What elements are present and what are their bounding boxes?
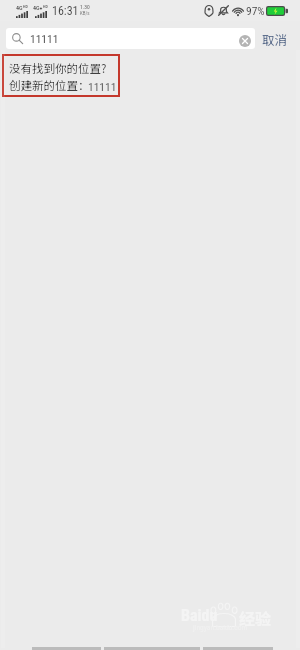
staticText: 经验: [239, 606, 272, 629]
staticText: 4G+: [33, 4, 43, 11]
staticText: HD: [23, 4, 28, 9]
staticText: KB/s: [80, 10, 90, 16]
staticText: 11111: [88, 80, 117, 93]
staticText: 创建新的位置：: [9, 77, 90, 94]
button[interactable]: 11111: [6, 28, 255, 49]
staticText: 97%: [246, 4, 265, 17]
button[interactable]: Clear search text: [239, 35, 251, 47]
staticText: 4G: [16, 4, 23, 11]
staticText: 11111: [30, 32, 59, 45]
button[interactable]: 取消: [255, 21, 295, 52]
button[interactable]: 没有找到你的位置?: [2, 54, 120, 97]
staticText: 1.30: [80, 4, 90, 10]
staticText: Baidu: [181, 606, 218, 625]
staticText: HD: [43, 4, 48, 9]
staticText: 16:31: [52, 4, 79, 18]
staticText: 没有找到你的位置?: [9, 60, 107, 77]
staticText: 取消: [262, 30, 288, 48]
